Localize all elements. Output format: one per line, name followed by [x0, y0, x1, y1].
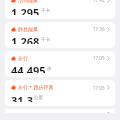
staticText: 17:05 [93, 55, 105, 61]
button[interactable]: 静息能量 [5, 22, 115, 48]
staticText: 1,295 [11, 5, 40, 15]
staticText: 17:36 [93, 26, 105, 32]
staticText: 公里 [34, 95, 43, 101]
staticText: 千卡 [41, 8, 50, 14]
staticText: 步 [47, 66, 52, 72]
staticText: 活动能量 [18, 0, 38, 3]
staticText: 步行 [18, 55, 28, 61]
staticText: 17:42 [93, 0, 105, 3]
button[interactable]: 爬楼层数 [5, 109, 115, 113]
staticText: 17:05 [93, 85, 105, 91]
button[interactable]: 步行 [5, 51, 115, 77]
staticText: 静息能量 [18, 26, 38, 32]
staticText: 1,268 [11, 34, 40, 44]
staticText: 千卡 [41, 37, 50, 43]
staticText: 步行 + 跑步距离 [18, 84, 54, 91]
staticText: 31.3 [11, 93, 33, 102]
staticText: 44,495 [11, 63, 46, 73]
button[interactable]: 步行 + 跑步距离 [5, 80, 115, 106]
button[interactable]: 活动能量 [5, 0, 115, 19]
